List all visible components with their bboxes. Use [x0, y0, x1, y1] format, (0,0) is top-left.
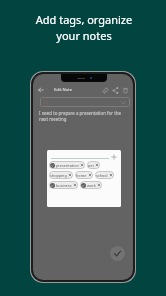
staticText: shopping: [50, 173, 67, 178]
button[interactable]: Add tag: [108, 151, 120, 163]
button[interactable]: Tag: [100, 85, 110, 95]
staticText: pet: [88, 163, 94, 168]
button[interactable]: Delete: [120, 85, 130, 95]
button[interactable]: school: [95, 171, 114, 179]
button[interactable]: Back: [36, 85, 46, 95]
button[interactable]: Save note: [110, 246, 125, 261]
staticText: Edit Note: [54, 87, 73, 93]
staticText: home: [76, 173, 87, 178]
button[interactable]: pet: [87, 161, 100, 169]
button[interactable]: business: [49, 181, 78, 189]
button[interactable]: [40, 97, 130, 107]
staticText: Add tags, organize your notes: [1, 12, 166, 43]
staticText: work: [87, 183, 96, 188]
staticText: I need to prepare a presentation for the…: [39, 110, 121, 122]
button[interactable]: work: [80, 181, 102, 189]
button[interactable]: Share: [110, 85, 120, 95]
staticText: school: [96, 173, 108, 178]
button[interactable]: presentation: [49, 161, 85, 169]
staticText: presentation: [56, 163, 79, 168]
button[interactable]: shopping: [49, 171, 73, 179]
button[interactable]: home: [75, 171, 93, 179]
staticText: business: [56, 183, 72, 188]
